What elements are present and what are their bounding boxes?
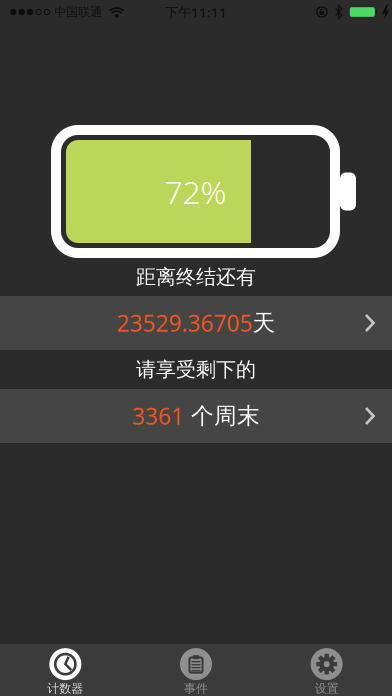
staticText: 距离终结还有 xyxy=(136,265,256,289)
staticText: 事件 xyxy=(184,681,208,696)
button[interactable]: 23529.36705 xyxy=(0,296,392,350)
button[interactable]: 3361 xyxy=(0,389,392,443)
staticText: 请享受剩下的 xyxy=(136,357,256,382)
staticText: 下午11:11 xyxy=(165,3,227,21)
staticText: 3361 xyxy=(132,401,184,431)
staticText: 中国联通 xyxy=(54,5,102,19)
staticText: 23529.36705 xyxy=(116,308,252,338)
staticText: 个周末 xyxy=(184,402,260,430)
staticText: 设置 xyxy=(315,681,339,696)
staticText: 计数器 xyxy=(47,681,83,696)
staticText: 72% xyxy=(164,170,226,213)
button[interactable]: 事件 xyxy=(131,644,261,696)
staticText: 天 xyxy=(252,309,275,337)
button[interactable]: 设置 xyxy=(261,644,392,696)
button[interactable]: 计数器 xyxy=(0,644,131,696)
